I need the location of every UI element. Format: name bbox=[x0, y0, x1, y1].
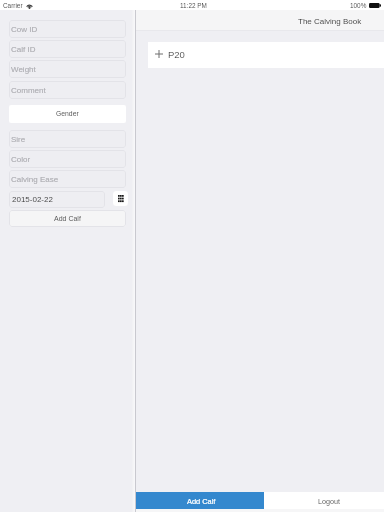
staticText: The Calving Book bbox=[298, 17, 362, 26]
staticText: Carrier bbox=[3, 2, 23, 9]
staticText: Sire bbox=[11, 135, 26, 144]
staticText: P20 bbox=[168, 49, 185, 60]
button[interactable]: Comment bbox=[9, 81, 126, 99]
button[interactable]: Weight bbox=[9, 60, 126, 78]
staticText: Color bbox=[11, 155, 31, 164]
button[interactable]: Logout bbox=[264, 492, 384, 509]
staticText: 2015-02-22 bbox=[12, 195, 53, 204]
button[interactable]: Gender bbox=[9, 105, 126, 123]
button[interactable]: Sire bbox=[9, 130, 126, 148]
button[interactable]: P20 bbox=[148, 42, 384, 68]
staticText: Weight bbox=[11, 65, 36, 74]
button[interactable]: 2015-02-22 bbox=[9, 191, 105, 208]
staticText: Logout bbox=[318, 497, 340, 505]
staticText: Add Calf bbox=[54, 215, 81, 223]
staticText: 11:22 PM bbox=[180, 2, 207, 9]
button[interactable]: Color bbox=[9, 150, 126, 168]
staticText: Calf ID bbox=[11, 45, 36, 54]
staticText: Cow ID bbox=[11, 25, 38, 34]
staticText: Calving Ease bbox=[11, 175, 59, 184]
button[interactable]: Calf ID bbox=[9, 40, 126, 58]
button[interactable]: Cow ID bbox=[9, 20, 126, 38]
button[interactable]: Pick date bbox=[113, 191, 128, 206]
staticText: Comment bbox=[11, 86, 46, 95]
button[interactable]: Calving Ease bbox=[9, 170, 126, 188]
staticText: 100% bbox=[350, 2, 367, 9]
staticText: Add Calf bbox=[187, 497, 216, 505]
button[interactable]: Add Calf bbox=[136, 492, 264, 509]
button[interactable]: Add Calf bbox=[9, 210, 126, 227]
staticText: Gender bbox=[56, 110, 79, 118]
